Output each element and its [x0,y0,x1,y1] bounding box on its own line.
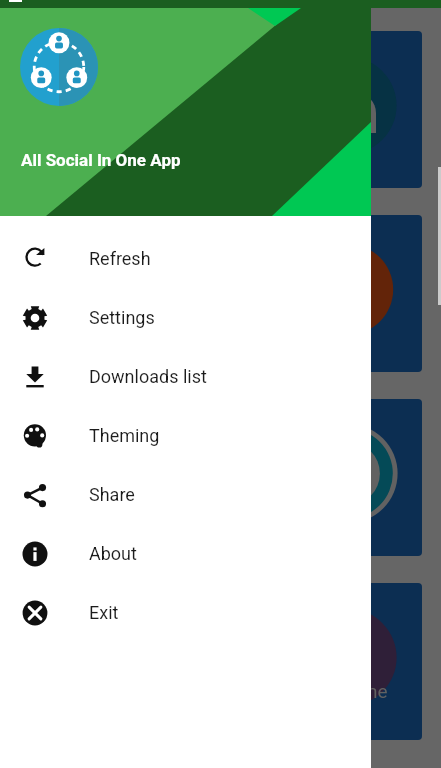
button[interactable]: Theming [0,406,371,465]
button[interactable]: Settings [0,288,371,347]
button[interactable] [295,215,422,372]
other: Share [21,481,49,509]
staticText: Theming [89,425,160,446]
staticText: Exit [89,602,119,623]
button[interactable]: ne [295,583,422,740]
other: About [21,540,49,568]
staticText: ne [367,680,388,702]
staticText: Share [89,484,135,505]
button[interactable] [295,31,422,188]
button[interactable]: Refresh [0,229,371,288]
other: Theming [21,422,49,450]
button[interactable]: Share [0,465,371,524]
staticText: Refresh [89,248,151,269]
button[interactable]: About [0,524,371,583]
other: Settings [21,304,49,332]
button[interactable]: Exit [0,583,371,642]
staticText: All Social In One App [21,150,181,170]
other: Downloads list [21,363,49,391]
staticText: Settings [89,307,155,328]
staticText: About [89,543,137,564]
button[interactable] [295,399,422,556]
other: Exit [21,599,49,627]
staticText: Downloads list [89,366,207,387]
other: Refresh [21,245,49,273]
button[interactable]: Downloads list [0,347,371,406]
